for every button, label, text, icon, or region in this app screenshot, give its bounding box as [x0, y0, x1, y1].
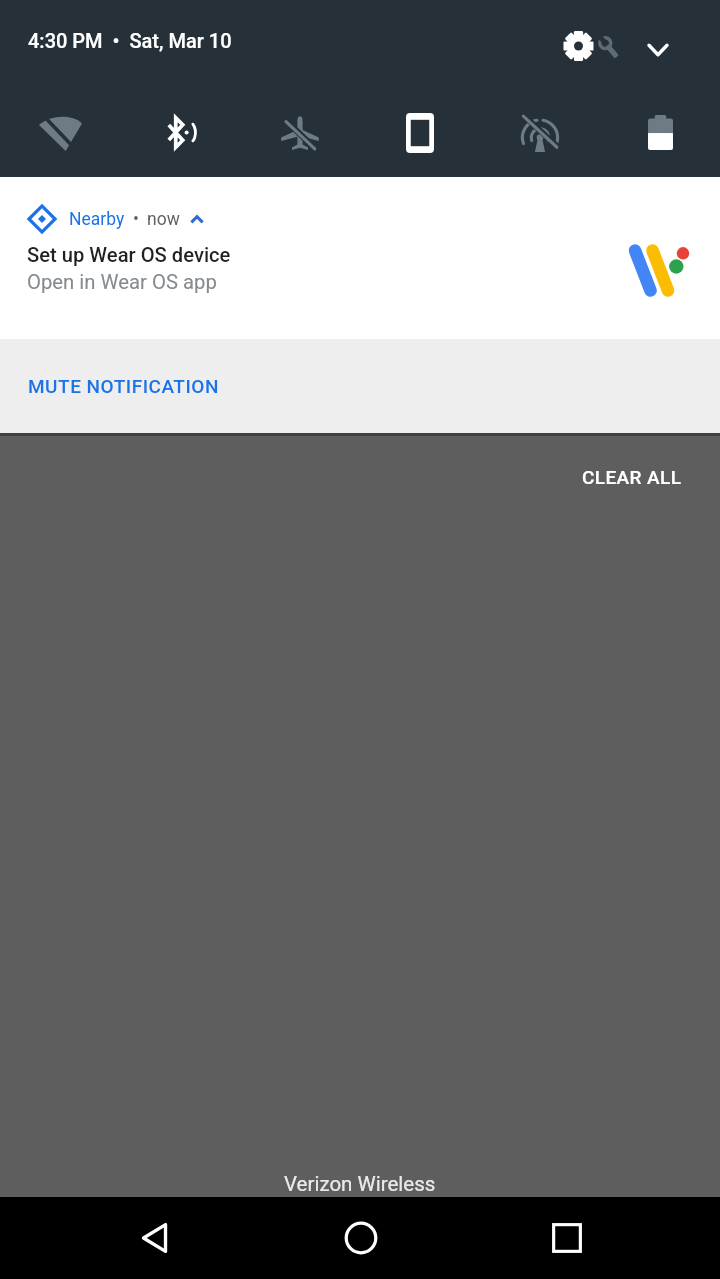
button[interactable]: Home	[321, 1198, 401, 1278]
button[interactable]: Recents	[527, 1198, 607, 1278]
staticText: MUTE NOTIFICATION	[28, 375, 219, 397]
button[interactable]: Bluetooth on	[120, 88, 240, 177]
button[interactable]: Wi-Fi off	[0, 88, 120, 177]
button[interactable]: Airplane mode off	[240, 88, 360, 177]
staticText: now	[147, 209, 180, 230]
button[interactable]: Settings	[556, 21, 622, 73]
button[interactable]: MUTE NOTIFICATION	[0, 339, 720, 433]
button[interactable]: Auto rotate	[360, 88, 480, 177]
staticText: Verizon Wireless	[284, 1172, 436, 1196]
staticText: Nearby	[69, 209, 125, 230]
button[interactable]: Hotspot off	[480, 88, 600, 177]
button[interactable]: Battery	[600, 88, 720, 177]
staticText: Set up Wear OS device	[27, 243, 231, 267]
button[interactable]: Expand	[634, 25, 682, 73]
button[interactable]: CLEAR ALL	[557, 447, 707, 507]
staticText: •	[133, 209, 139, 230]
button[interactable]: Back	[114, 1198, 194, 1278]
staticText: CLEAR ALL	[582, 466, 682, 488]
staticText: 4:30 PM • Sat, Mar 10	[28, 29, 232, 52]
staticText: Open in Wear OS app	[27, 270, 217, 294]
